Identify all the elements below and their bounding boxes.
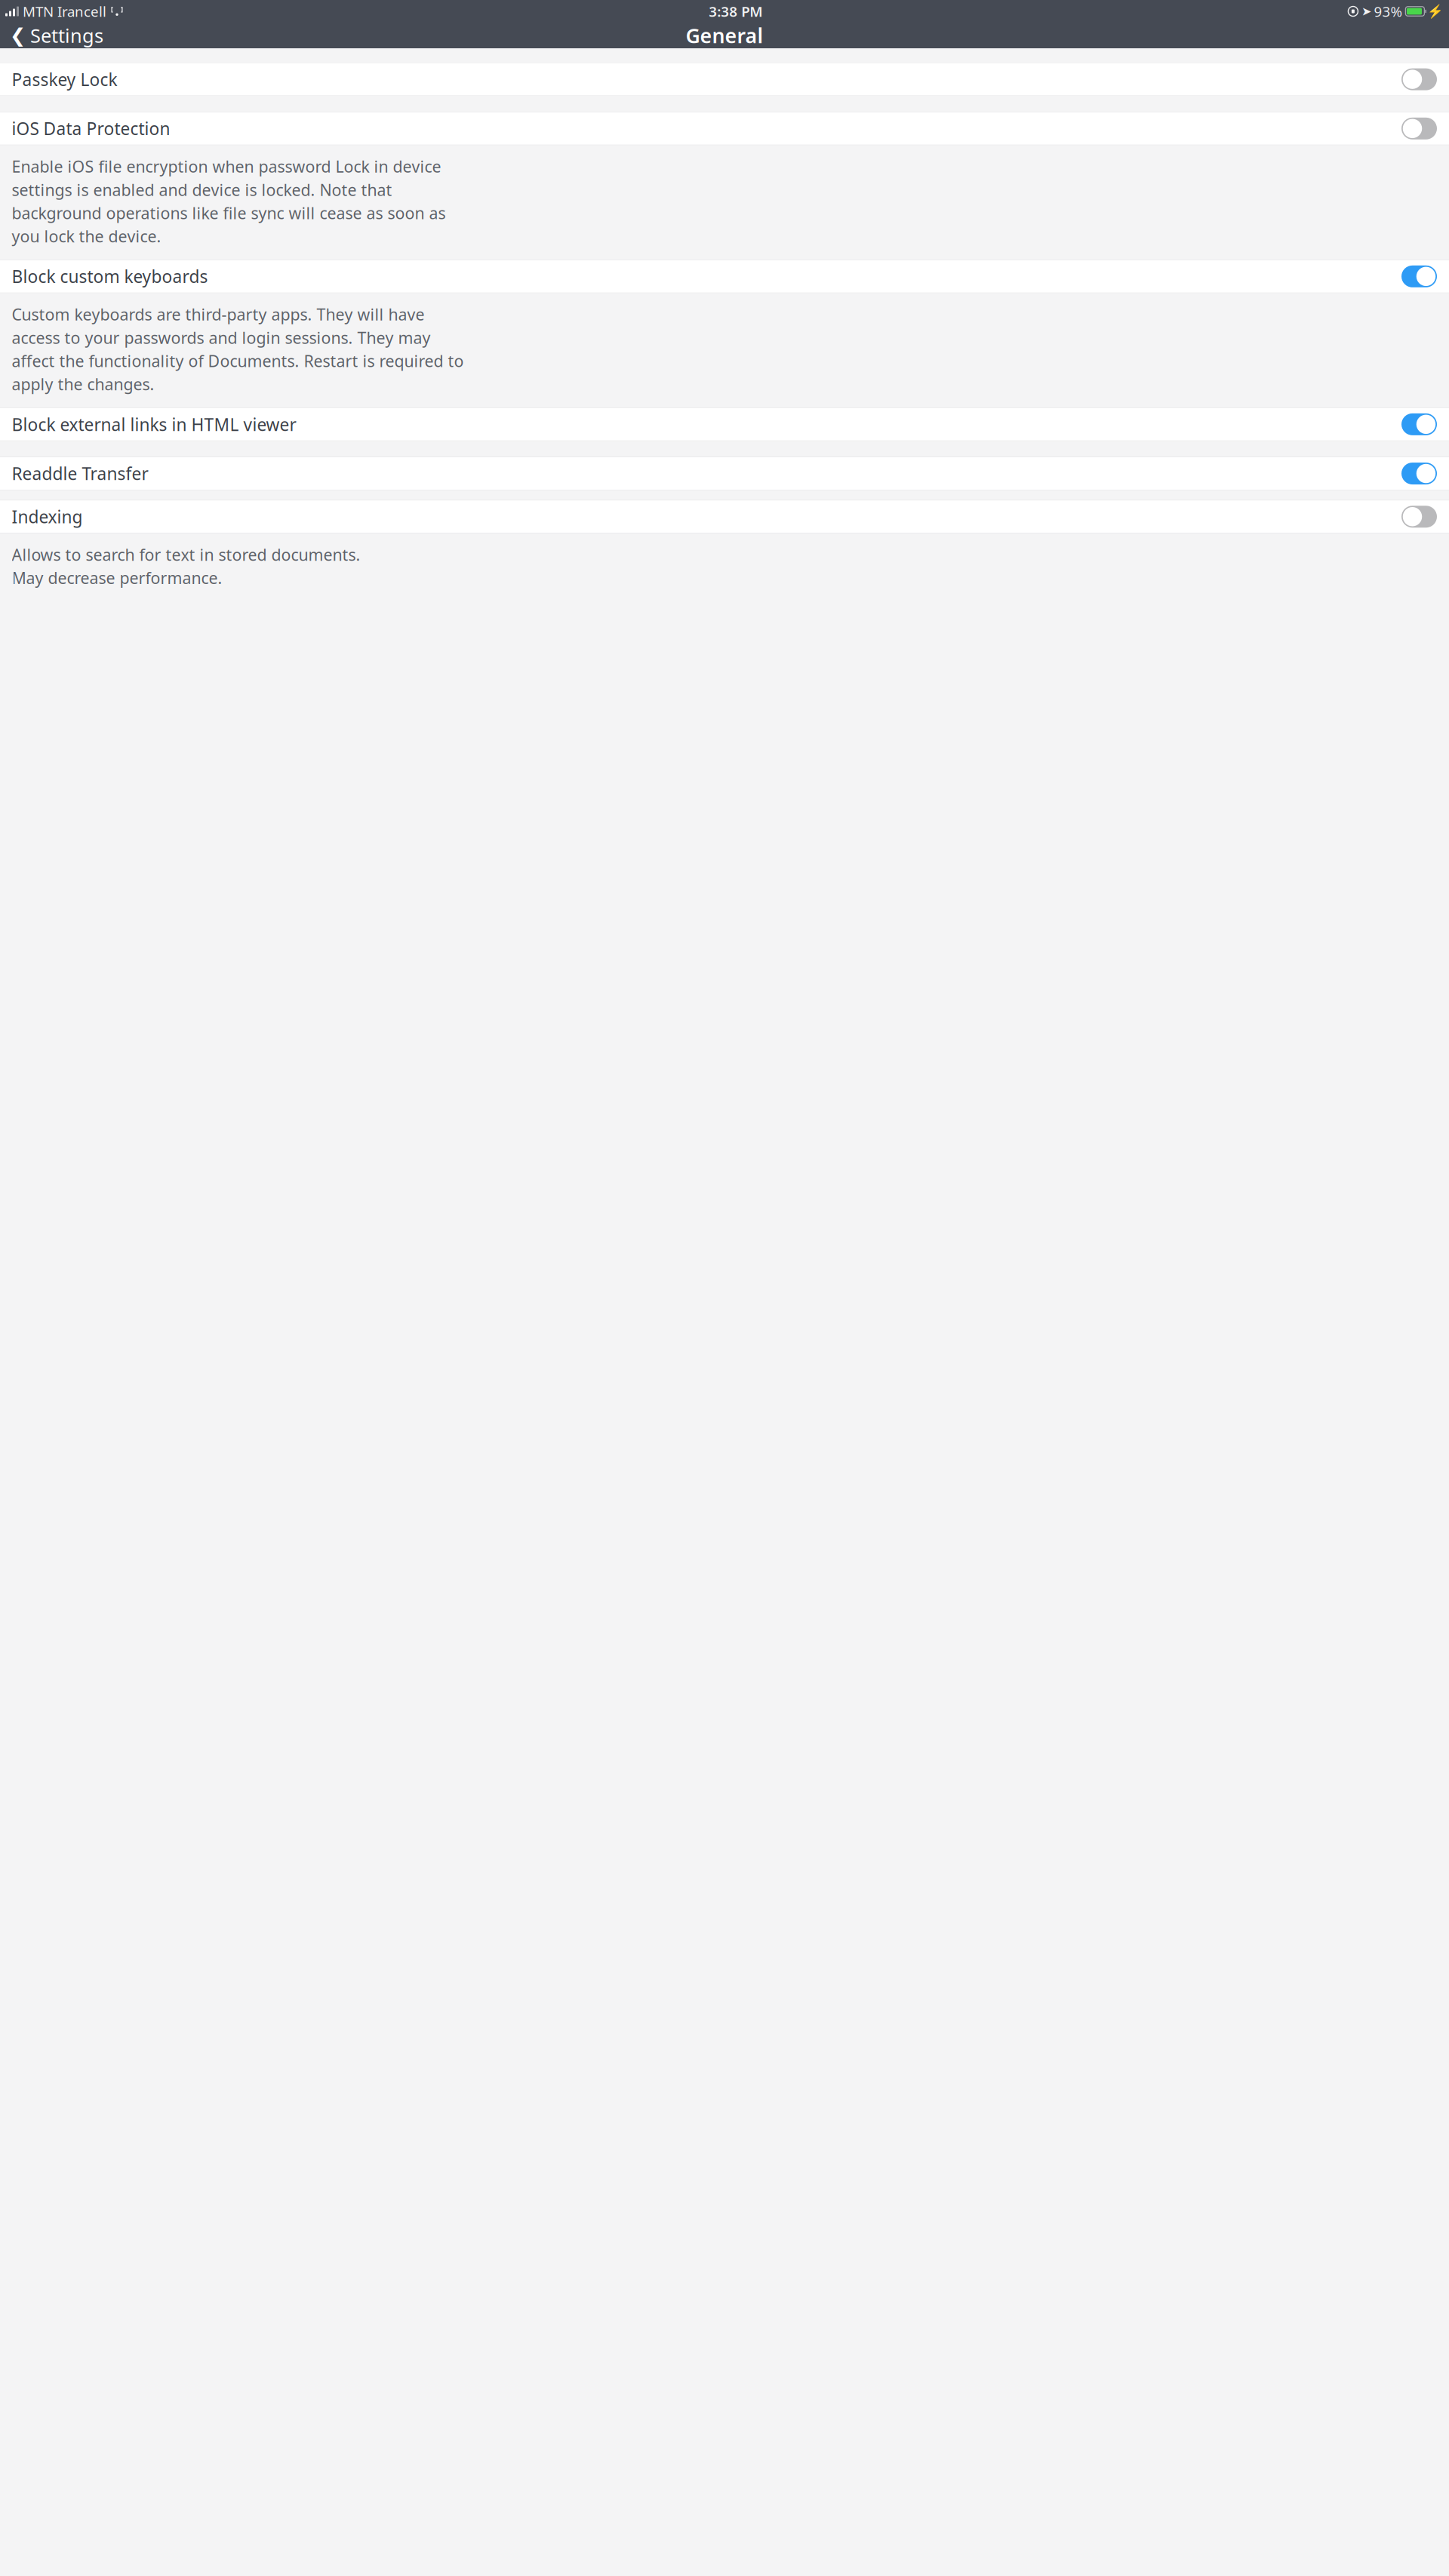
staticText: Block custom keyboards (12, 265, 208, 288)
button[interactable]: Block custom keyboards (0, 260, 1449, 293)
staticText: MTN Irancell (23, 2, 106, 21)
staticText: 3:38 PM (709, 2, 762, 21)
staticText: affect the functionality of Documents. R… (12, 350, 464, 372)
button[interactable]: Readdle Transfer (0, 457, 1449, 490)
staticText: Indexing (12, 505, 83, 528)
button[interactable]: Indexing (0, 500, 1449, 533)
staticText: background operations like file sync wil… (12, 202, 446, 224)
staticText: you lock the device. (12, 226, 161, 247)
staticText: Readdle Transfer (12, 462, 148, 485)
staticText: Block external links in HTML viewer (12, 413, 296, 436)
staticText: access to your passwords and login sessi… (12, 327, 431, 348)
staticText: apply the changes. (12, 373, 154, 395)
staticText: ⚡ (1427, 4, 1444, 19)
staticText: Allows to search for text in stored docu… (12, 544, 360, 565)
staticText: 93% (1374, 2, 1403, 21)
staticText: May decrease performance. (12, 567, 222, 589)
staticText: Custom keyboards are third-party apps. T… (12, 304, 425, 325)
staticText: Enable iOS file encryption when password… (12, 156, 441, 177)
button[interactable]: iOS Data Protection (0, 112, 1449, 145)
staticText: ➤ (1361, 4, 1371, 18)
staticText: iOS Data Protection (12, 117, 170, 140)
staticText: Settings (30, 23, 103, 48)
button[interactable]: Passkey Lock (0, 63, 1449, 96)
staticText: Passkey Lock (12, 68, 117, 91)
staticText: settings is enabled and device is locked… (12, 179, 392, 200)
button[interactable]: Block external links in HTML viewer (0, 408, 1449, 441)
button[interactable]: ❮ (2, 19, 111, 52)
staticText: General (686, 22, 763, 49)
staticText: ❮ (10, 25, 26, 46)
